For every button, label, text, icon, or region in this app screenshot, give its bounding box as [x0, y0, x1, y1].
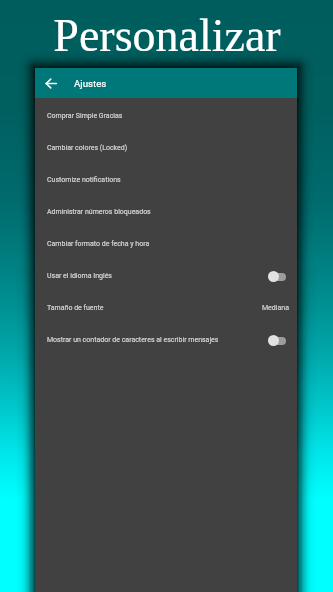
button[interactable]: Mostrar contador de caracteres toggle [268, 335, 286, 346]
staticText: Mostrar un contador de caracteres al esc… [47, 336, 219, 344]
button[interactable]: Comprar Simple Gracias [35, 100, 297, 132]
staticText: Personalizar [53, 10, 281, 61]
button[interactable]: Administrar números bloqueados [35, 196, 297, 228]
staticText: Cambiar colores (Locked) [47, 144, 128, 152]
staticText: Ajustes [74, 78, 107, 89]
button[interactable]: Usar el idioma Inglés [35, 260, 297, 292]
button[interactable]: Tamaño de fuente [35, 292, 297, 324]
staticText: Customize notifications [47, 176, 121, 184]
staticText: Cambiar formato de fecha y hora [47, 240, 150, 248]
button[interactable]: Customize notifications [35, 164, 297, 196]
button[interactable]: Usar el idioma Inglés toggle [268, 271, 286, 282]
staticText: Administrar números bloqueados [47, 208, 151, 216]
button[interactable]: Cambiar colores (Locked) [35, 132, 297, 164]
staticText: Tamaño de fuente [47, 304, 104, 312]
staticText: Comprar Simple Gracias [47, 112, 123, 120]
button[interactable]: Cambiar formato de fecha y hora [35, 228, 297, 260]
button[interactable]: Mostrar un contador de caracteres al esc… [35, 324, 297, 356]
staticText: Mediana [262, 304, 289, 312]
button[interactable]: Back [35, 68, 66, 98]
staticText: Usar el idioma Inglés [47, 272, 112, 280]
